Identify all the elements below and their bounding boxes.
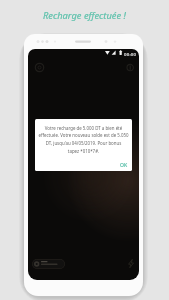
button[interactable]: Flash shortcut — [128, 259, 134, 268]
staticText: Votre recharge de 5.000 DT a bien été ef… — [37, 125, 130, 155]
button[interactable]: OK — [116, 160, 132, 171]
staticText: 00:00 — [124, 51, 137, 57]
button[interactable]: Google search widget — [32, 259, 65, 269]
staticText: OK — [120, 162, 128, 169]
staticText: Recharge effectuée ! — [43, 9, 126, 22]
